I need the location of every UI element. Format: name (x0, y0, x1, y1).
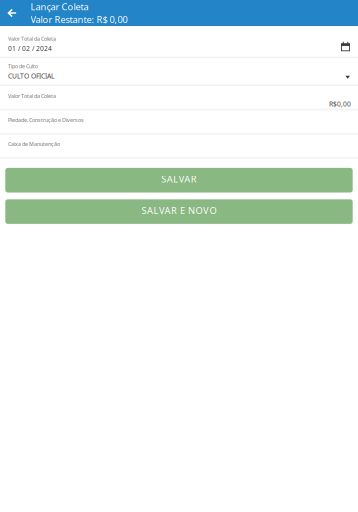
staticText: CULTO OFICIAL (8, 71, 54, 80)
button[interactable]: Piedade, Construção e Diversos (0, 110, 358, 133)
staticText: SALVAR (161, 173, 197, 185)
staticText: Lançar Coleta (30, 0, 88, 13)
button[interactable]: Voltar (0, 0, 23, 26)
staticText: SALVAR E NOVO (141, 204, 216, 217)
button[interactable]: Valor Total da Coleta (0, 86, 358, 109)
staticText: Tipo de Culto (8, 63, 38, 70)
staticText: Valor Total da Coleta (8, 35, 56, 42)
button[interactable]: SALVAR E NOVO (5, 199, 353, 224)
staticText: Valor Restante: R$ 0,00 (30, 13, 127, 26)
staticText: R$0,00 (329, 100, 351, 108)
button[interactable]: Caixa de Manutenção (0, 135, 358, 157)
staticText: Caixa de Manutenção (8, 140, 60, 147)
staticText: 01 / 02 / 2024 (8, 44, 52, 53)
button[interactable]: SALVAR (5, 168, 353, 192)
staticText: Piedade, Construção e Diversos (8, 116, 84, 123)
staticText: Valor Total da Coleta (8, 92, 56, 100)
button[interactable]: Valor Total da Coleta (0, 26, 358, 57)
button[interactable]: Tipo de Culto (0, 58, 358, 84)
